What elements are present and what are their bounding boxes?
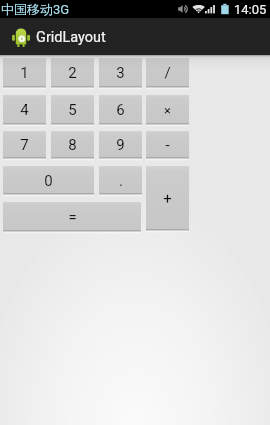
button[interactable]: 2 (51, 58, 94, 90)
button[interactable]: 3 (99, 58, 142, 90)
button[interactable]: / (146, 58, 189, 90)
button[interactable]: 5 (51, 95, 94, 127)
staticText: 6 (116, 101, 125, 119)
staticText: 5 (68, 101, 77, 119)
staticText: 14:05 (234, 2, 267, 17)
staticText: + (163, 190, 172, 208)
button[interactable]: 1 (3, 58, 46, 90)
button[interactable]: . (99, 166, 142, 197)
staticText: / (164, 64, 171, 82)
button[interactable]: 9 (99, 131, 142, 161)
button[interactable]: 8 (51, 131, 94, 161)
button[interactable]: 7 (3, 131, 46, 161)
button[interactable]: = (3, 202, 141, 234)
button[interactable]: 4 (3, 95, 46, 127)
staticText: × (164, 103, 171, 118)
staticText: 7 (20, 136, 29, 154)
staticText: 1 (20, 64, 29, 82)
staticText: 9 (116, 136, 125, 154)
staticText: = (68, 208, 77, 226)
button[interactable]: × (146, 95, 189, 127)
staticText: GridLayout (36, 29, 106, 46)
staticText: 2 (68, 64, 77, 82)
button[interactable]: 0 (3, 166, 94, 197)
staticText: . (119, 172, 123, 190)
staticText: 中国移动3G (1, 1, 70, 17)
button[interactable]: - (146, 131, 189, 161)
staticText: 4 (20, 101, 29, 119)
staticText: 0 (44, 172, 53, 190)
button[interactable]: App icon (12, 28, 30, 47)
staticText: 8 (68, 136, 77, 154)
button[interactable]: + (146, 166, 189, 233)
button[interactable]: 6 (99, 95, 142, 127)
staticText: - (165, 136, 170, 154)
staticText: 3 (116, 64, 125, 82)
